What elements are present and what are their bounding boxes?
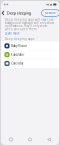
- staticText: Learn more: [5, 32, 20, 35]
- button[interactable]: Restore: [41, 10, 59, 16]
- button[interactable]: Home: [24, 135, 35, 144]
- button[interactable]: Learn more: [5, 32, 20, 35]
- button[interactable]: Back: [1, 8, 5, 17]
- staticText: Restore: [45, 11, 56, 15]
- staticText: Calendar: [11, 62, 23, 65]
- staticText: Deep sleeping apps: [5, 37, 34, 41]
- button[interactable]: Back: [43, 135, 54, 144]
- button[interactable]: Calculator: [1, 50, 59, 59]
- button[interactable]: Recents: [5, 135, 16, 144]
- button[interactable]: Calendar: [1, 59, 59, 68]
- staticText: Deep sleeping: [7, 10, 31, 16]
- button[interactable]: Baby Vision: [1, 42, 59, 50]
- staticText: Baby Vision: [11, 44, 27, 48]
- staticText: Calculator: [11, 53, 24, 56]
- staticText: Deep sleeping apps will never use backgr…: [5, 18, 54, 31]
